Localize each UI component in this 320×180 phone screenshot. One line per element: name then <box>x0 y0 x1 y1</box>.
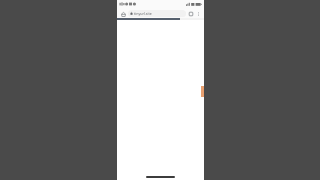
button[interactable]: Switch tabs <box>187 10 195 18</box>
button[interactable]: Home gesture <box>146 176 175 178</box>
staticText: tinyurl.site <box>134 11 152 16</box>
button[interactable]: More options <box>195 10 202 17</box>
button[interactable]: tinyurl.site <box>128 10 186 17</box>
button[interactable]: Home <box>119 10 127 18</box>
